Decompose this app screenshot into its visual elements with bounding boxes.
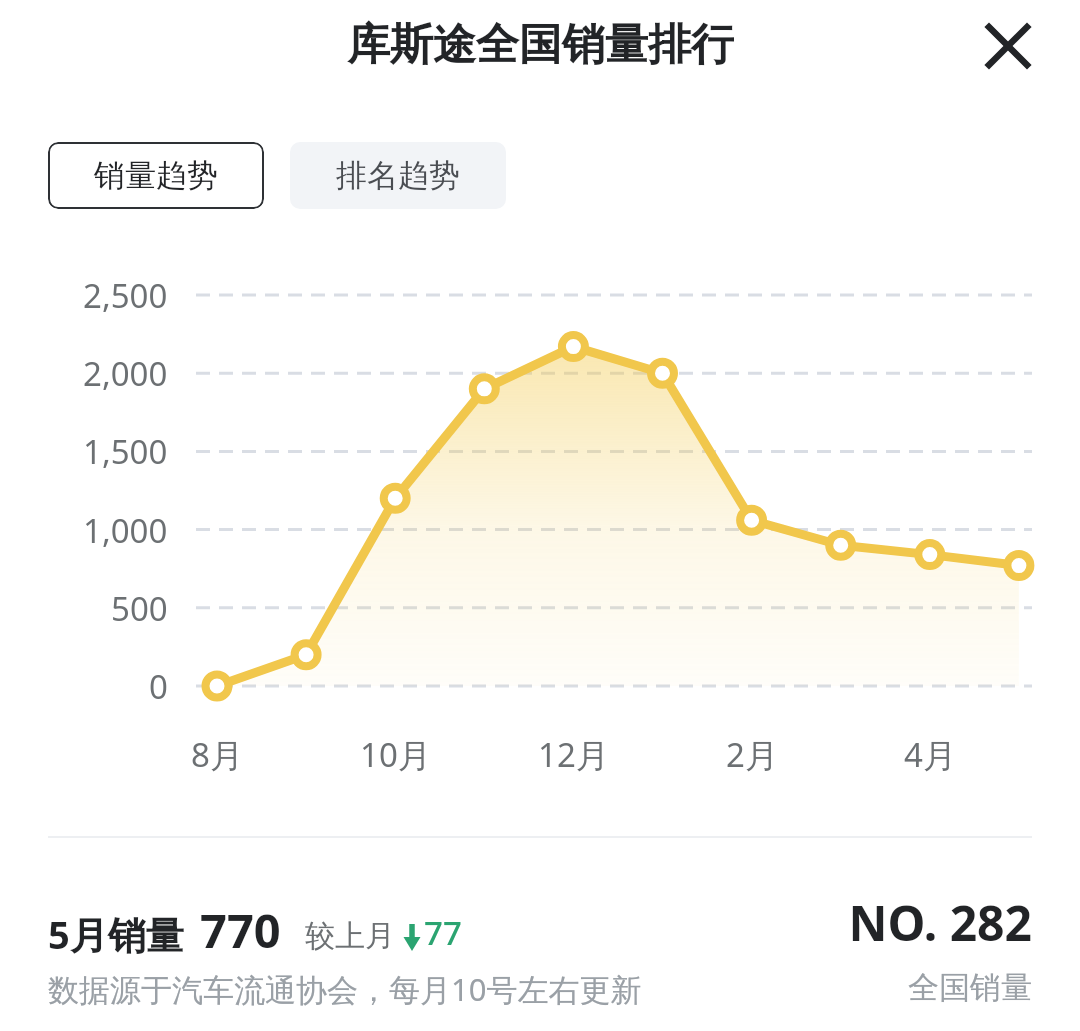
staticText: 10月 [360,732,431,777]
staticText: 500 [111,586,168,631]
staticText: 770 [200,898,281,962]
staticText: 1,000 [83,508,168,553]
staticText: 数据源于汽车流通协会，每月10号左右更新 [48,968,642,1010]
staticText: 排名趋势 [336,156,460,195]
staticText: 全国销量 [908,968,1032,1007]
staticText: 4月 [904,732,956,777]
staticText: 0 [149,664,168,709]
staticText: 较上月 [305,917,395,955]
staticText: 2,500 [83,273,168,318]
staticText: 5月销量 [48,908,184,960]
staticText: 2,000 [83,351,168,396]
staticText: 12月 [538,732,609,777]
staticText: 2月 [726,732,778,777]
button[interactable]: 销量趋势 [48,142,264,209]
staticText: 库斯途全国销量排行 [347,18,734,68]
staticText: 8月 [191,732,243,777]
staticText: NO. 282 [848,890,1032,955]
staticText: 77 [424,910,462,955]
button[interactable]: Close [968,6,1048,86]
button[interactable]: 排名趋势 [290,142,506,209]
staticText: 销量趋势 [94,156,218,195]
staticText: 1,500 [83,429,168,474]
